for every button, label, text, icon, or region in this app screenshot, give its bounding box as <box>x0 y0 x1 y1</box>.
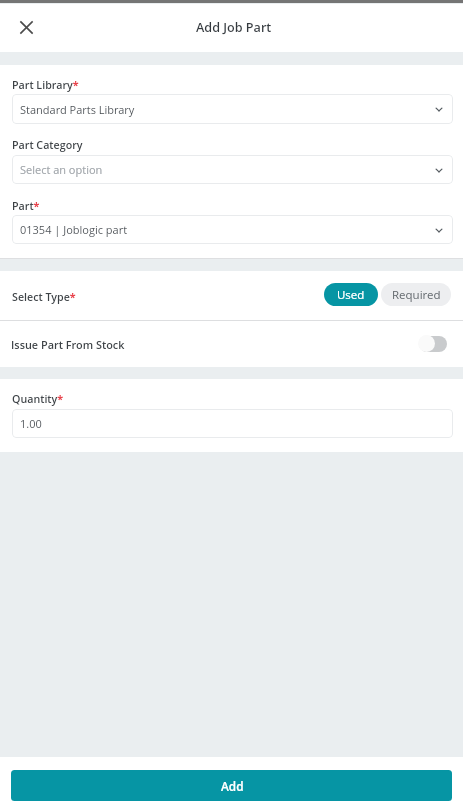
staticText: Add Job Part <box>196 19 272 36</box>
staticText: Part Category <box>12 138 83 153</box>
staticText: 01354 | Joblogic part <box>20 222 128 237</box>
button[interactable]: Used <box>324 283 378 306</box>
button[interactable]: Close <box>15 16 38 39</box>
staticText: Part* <box>12 199 40 214</box>
staticText: Add <box>221 778 244 794</box>
staticText: Required <box>392 287 441 303</box>
staticText: Select an option <box>20 162 103 177</box>
button[interactable]: Issue Part From Stock toggle <box>418 335 447 352</box>
button[interactable]: Standard Parts Library <box>12 94 453 124</box>
button[interactable]: 01354 | Joblogic part <box>12 215 453 244</box>
button[interactable]: Add <box>11 770 452 801</box>
staticText: Standard Parts Library <box>20 102 135 117</box>
button[interactable]: Required <box>381 283 451 306</box>
staticText: Issue Part From Stock <box>11 337 125 352</box>
staticText: Quantity* <box>12 392 64 407</box>
staticText: Used <box>337 287 365 303</box>
staticText: Select Type* <box>12 290 76 305</box>
button[interactable]: 1.00 <box>12 409 453 438</box>
button[interactable]: Select an option <box>12 155 453 184</box>
staticText: 1.00 <box>20 416 42 431</box>
staticText: Part Library* <box>12 78 79 93</box>
